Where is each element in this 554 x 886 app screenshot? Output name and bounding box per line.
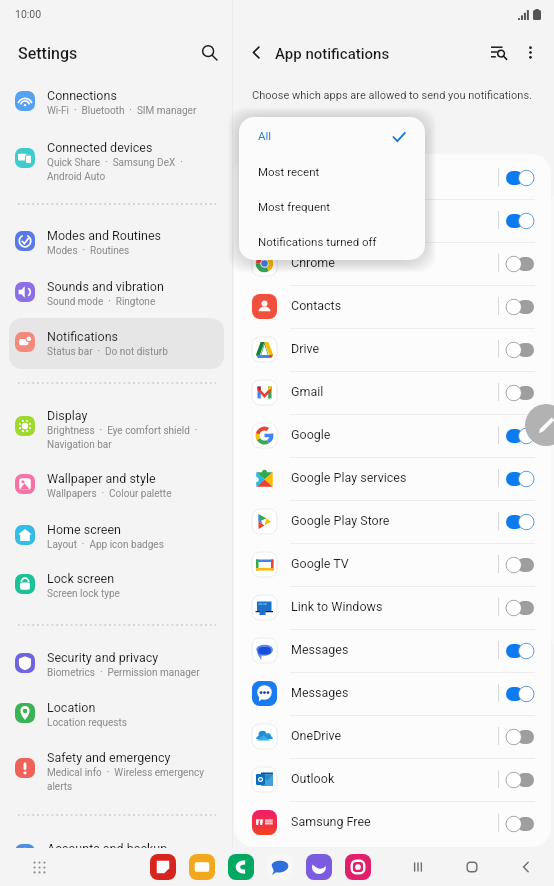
staticText: Home screen: [47, 522, 122, 537]
button[interactable]: [239, 225, 425, 260]
button[interactable]: [234, 371, 551, 414]
button[interactable]: [9, 688, 224, 739]
button[interactable]: snote: [150, 854, 176, 880]
staticText: Safety and emergency: [47, 750, 171, 765]
staticText: Wallpapers · Colour palette: [47, 488, 172, 500]
button[interactable]: [234, 328, 551, 371]
button[interactable]: [234, 285, 551, 328]
button[interactable]: [239, 155, 425, 190]
button[interactable]: [9, 317, 224, 368]
button[interactable]: Edit: [525, 404, 554, 446]
staticText: Calendar: [291, 169, 341, 184]
staticText: Notifications: [47, 329, 119, 344]
button[interactable]: Off: [506, 341, 534, 359]
button[interactable]: phone: [228, 854, 254, 880]
button[interactable]: [234, 414, 551, 457]
button[interactable]: insta: [345, 854, 371, 880]
button[interactable]: [9, 401, 224, 452]
button[interactable]: [234, 457, 551, 500]
staticText: Layout · App icon badges: [47, 539, 164, 551]
button[interactable]: On: [506, 685, 534, 703]
button[interactable]: [9, 266, 224, 317]
button[interactable]: Off: [506, 599, 534, 617]
staticText: Medical info · Wireless emergency alerts: [47, 767, 204, 792]
staticText: Google Play services: [291, 470, 407, 485]
button[interactable]: [234, 672, 551, 715]
button[interactable]: More options: [516, 38, 544, 66]
button[interactable]: Off: [506, 384, 534, 402]
button[interactable]: [9, 76, 224, 127]
button[interactable]: Off: [506, 556, 534, 574]
staticText: Screen lock type: [47, 588, 120, 600]
button[interactable]: On: [506, 427, 534, 445]
button[interactable]: files: [189, 854, 215, 880]
button[interactable]: [234, 629, 551, 672]
button[interactable]: [9, 509, 224, 560]
staticText: Modes · Routines: [47, 245, 130, 257]
staticText: All: [258, 129, 272, 142]
button[interactable]: msg: [267, 854, 293, 880]
button[interactable]: [234, 801, 551, 844]
staticText: Connections: [47, 88, 117, 103]
button[interactable]: Off: [506, 255, 534, 273]
staticText: Wi-Fi · Bluetooth · SIM manager: [47, 105, 197, 117]
staticText: Contacts: [291, 298, 342, 313]
button[interactable]: internet: [306, 854, 332, 880]
staticText: Samsung Free: [291, 814, 371, 829]
button[interactable]: Off: [506, 298, 534, 316]
staticText: Choose which apps are allowed to send yo…: [252, 89, 532, 102]
button[interactable]: [234, 758, 551, 801]
button[interactable]: [234, 586, 551, 629]
staticText: Outlook: [291, 771, 335, 786]
button[interactable]: [239, 119, 425, 154]
button[interactable]: [239, 190, 425, 225]
staticText: Accounts and backup: [47, 841, 168, 856]
staticText: Biometrics · Permission manager: [47, 667, 200, 679]
staticText: Lock screen: [47, 571, 115, 586]
button[interactable]: [9, 637, 224, 688]
staticText: Messages: [291, 642, 349, 657]
button[interactable]: Back: [242, 38, 270, 66]
button[interactable]: Recents: [406, 855, 430, 879]
staticText: Messages: [291, 685, 349, 700]
staticText: Sounds and vibration: [47, 279, 164, 294]
staticText: Most frequent: [258, 200, 331, 213]
button[interactable]: On: [506, 513, 534, 531]
button[interactable]: [9, 743, 224, 794]
button[interactable]: On: [506, 642, 534, 660]
button[interactable]: On: [506, 169, 534, 187]
staticText: Google TV: [291, 556, 349, 571]
button[interactable]: On: [506, 212, 534, 230]
button[interactable]: [9, 458, 224, 509]
staticText: Connected devices: [47, 140, 153, 155]
staticText: Brightness · Eye comfort shield · Naviga…: [47, 425, 198, 450]
button[interactable]: [234, 156, 551, 199]
staticText: Notifications turned off: [258, 235, 377, 248]
button[interactable]: On: [506, 470, 534, 488]
staticText: Link to Windows: [291, 599, 383, 614]
button[interactable]: Back: [514, 855, 538, 879]
button[interactable]: [9, 558, 224, 609]
staticText: Status bar · Do not disturb: [47, 346, 168, 358]
button[interactable]: [9, 132, 224, 183]
button[interactable]: [234, 500, 551, 543]
button[interactable]: [234, 242, 551, 285]
staticText: Location requests: [47, 717, 127, 729]
button[interactable]: Off: [506, 728, 534, 746]
button[interactable]: [234, 543, 551, 586]
button[interactable]: Off: [506, 815, 534, 833]
button[interactable]: Home: [460, 855, 484, 879]
button[interactable]: [9, 829, 224, 880]
button[interactable]: [9, 318, 224, 369]
staticText: Chrome: [291, 255, 335, 270]
button[interactable]: Off: [506, 771, 534, 789]
button[interactable]: Search: [195, 38, 223, 66]
button[interactable]: [9, 216, 224, 267]
button[interactable]: Sort and search: [485, 38, 513, 66]
staticText: Display: [47, 408, 88, 423]
button[interactable]: [234, 715, 551, 758]
button[interactable]: Apps: [27, 855, 51, 879]
staticText: Settings: [18, 44, 78, 63]
button[interactable]: [234, 199, 551, 242]
